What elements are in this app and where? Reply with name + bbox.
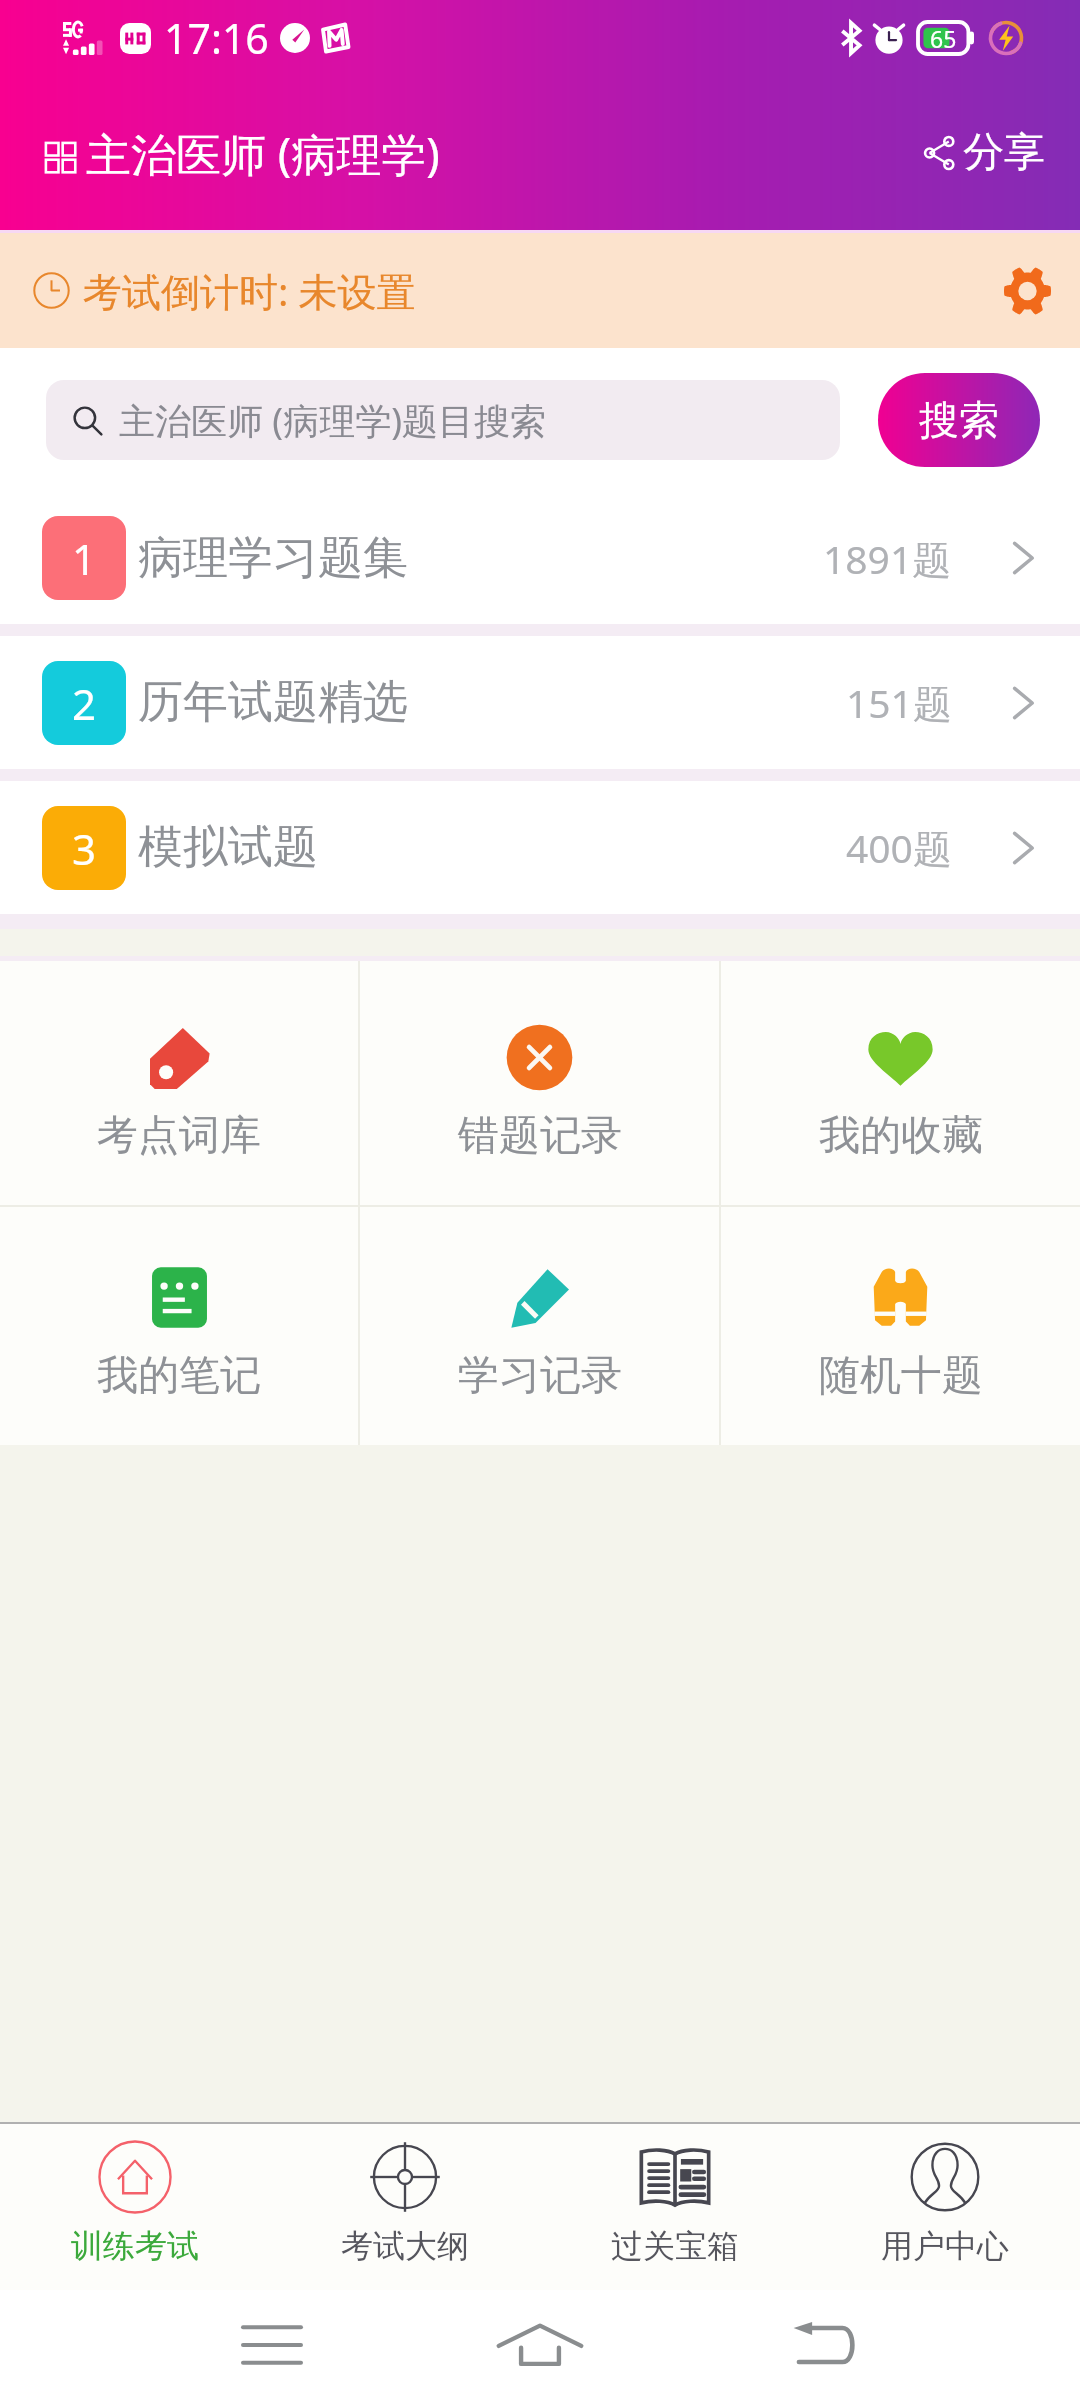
staticText: 考试大纲 xyxy=(341,2226,469,2266)
staticText: 17:16 xyxy=(164,10,269,66)
staticText: 我的收藏 xyxy=(819,1110,983,1162)
button[interactable]: 随机十题 xyxy=(721,1207,1080,1445)
button[interactable]: Back xyxy=(764,2290,884,2400)
staticText: 65 xyxy=(930,23,957,54)
button[interactable]: 训练考试 xyxy=(0,2124,270,2290)
staticText: 1 xyxy=(72,530,97,587)
button[interactable]: 我的收藏 xyxy=(721,961,1080,1205)
staticText: 训练考试 xyxy=(71,2226,199,2266)
staticText: 考点词库 xyxy=(97,1110,261,1162)
button[interactable]: Home xyxy=(480,2290,600,2400)
staticText: 我的笔记 xyxy=(97,1350,261,1402)
staticText: 3 xyxy=(72,820,97,877)
button[interactable]: 考试大纲 xyxy=(270,2124,540,2290)
button[interactable]: 主治医师 (病理学)题目搜索 xyxy=(46,380,840,460)
staticText: 模拟试题 xyxy=(138,819,318,876)
button[interactable]: Recents xyxy=(212,2290,332,2400)
staticText: 400题 xyxy=(846,821,952,874)
staticText: 搜索 xyxy=(919,395,999,445)
staticText: 错题记录 xyxy=(458,1110,622,1162)
staticText: 151题 xyxy=(846,676,952,729)
button[interactable]: 3 xyxy=(0,781,1080,914)
staticText: 考试倒计时: 未设置 xyxy=(83,264,416,317)
staticText: 用户中心 xyxy=(881,2226,1009,2266)
staticText: 2 xyxy=(72,675,97,732)
button[interactable]: 用户中心 xyxy=(810,2124,1080,2290)
staticText: 分享 xyxy=(963,127,1045,179)
button[interactable]: 搜索 xyxy=(878,373,1040,467)
button[interactable]: 2 xyxy=(0,636,1080,769)
button[interactable]: 我的笔记 xyxy=(0,1207,358,1445)
button[interactable]: 考点词库 xyxy=(0,961,358,1205)
button[interactable]: 1 xyxy=(0,492,1080,624)
button[interactable]: Settings xyxy=(996,258,1059,324)
button[interactable]: 分享 xyxy=(920,115,1049,191)
staticText: 过关宝箱 xyxy=(611,2226,739,2266)
staticText: 历年试题精选 xyxy=(138,674,408,731)
staticText: 主治医师 (病理学)题目搜索 xyxy=(119,396,546,445)
staticText: 主治医师 (病理学) xyxy=(86,123,440,184)
staticText: 学习记录 xyxy=(458,1350,622,1402)
staticText: 病理学习题集 xyxy=(138,530,408,587)
staticText: 1891题 xyxy=(823,532,952,585)
button[interactable]: 过关宝箱 xyxy=(540,2124,810,2290)
button[interactable]: 错题记录 xyxy=(360,961,719,1205)
staticText: 随机十题 xyxy=(819,1350,983,1402)
button[interactable]: 学习记录 xyxy=(360,1207,719,1445)
